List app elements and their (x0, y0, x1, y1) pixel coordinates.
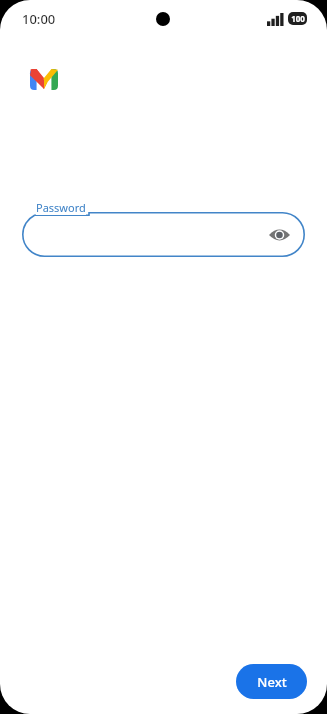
button[interactable]: Show password (22, 212, 305, 257)
button[interactable]: Next (236, 664, 307, 699)
button[interactable]: Show password (263, 219, 295, 251)
staticText: 100 (291, 13, 305, 24)
staticText: Next (257, 673, 287, 691)
staticText: Password (36, 200, 86, 215)
staticText: 10:00 (22, 10, 56, 28)
